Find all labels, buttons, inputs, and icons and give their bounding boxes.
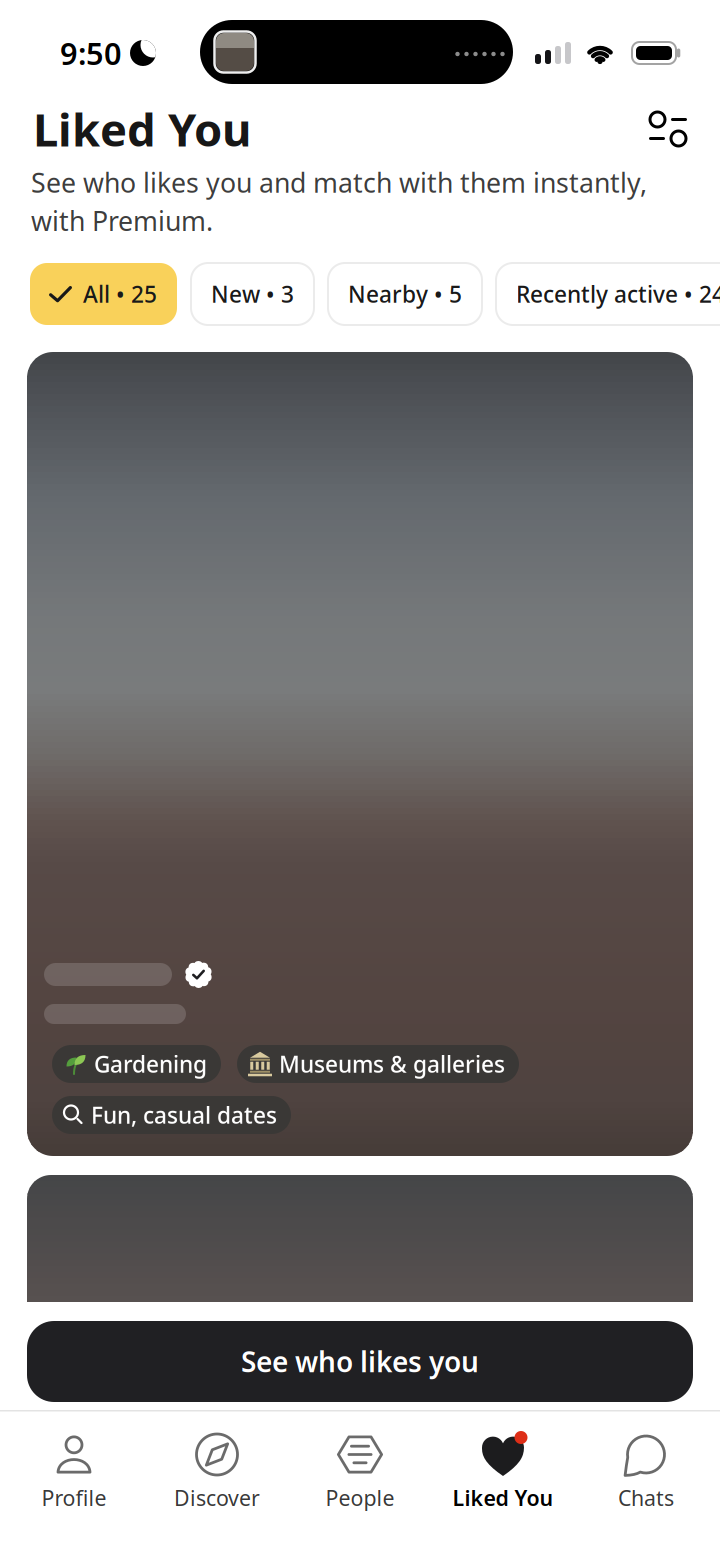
button[interactable]: Chats (574, 1431, 717, 1512)
button[interactable]: New • 3 (191, 263, 314, 325)
staticText: Nearby • 5 (348, 279, 462, 309)
button[interactable]: See who likes you (27, 1321, 693, 1402)
button[interactable]: Liked You (431, 1431, 574, 1512)
button[interactable]: Profile card (27, 352, 693, 1156)
staticText: 9:50 (60, 33, 122, 73)
staticText: New • 3 (211, 279, 294, 309)
staticText: See who likes you (241, 1343, 479, 1380)
button[interactable]: Discover (145, 1431, 288, 1512)
staticText: Liked You (33, 99, 251, 159)
staticText: All • 25 (83, 279, 157, 309)
staticText: People (325, 1483, 394, 1512)
staticText: See who likes you and match with them in… (31, 165, 647, 200)
button[interactable]: People (288, 1431, 431, 1512)
staticText: Recently active • 24 (516, 279, 720, 309)
button[interactable]: All • 25 (30, 263, 177, 325)
button[interactable]: Nearby • 5 (328, 263, 482, 325)
staticText: Fun, casual dates (91, 1100, 277, 1130)
staticText: Profile (41, 1483, 106, 1512)
staticText: Gardening (94, 1049, 207, 1079)
staticText: Chats (618, 1483, 674, 1512)
staticText: Liked You (452, 1483, 553, 1512)
staticText: Museums & galleries (279, 1049, 505, 1079)
staticText: with Premium. (31, 203, 213, 238)
button[interactable]: Recently active • 24 (496, 263, 720, 325)
staticText: Discover (174, 1483, 260, 1512)
button[interactable]: Profile (2, 1431, 145, 1512)
button[interactable]: Filter (648, 110, 688, 148)
